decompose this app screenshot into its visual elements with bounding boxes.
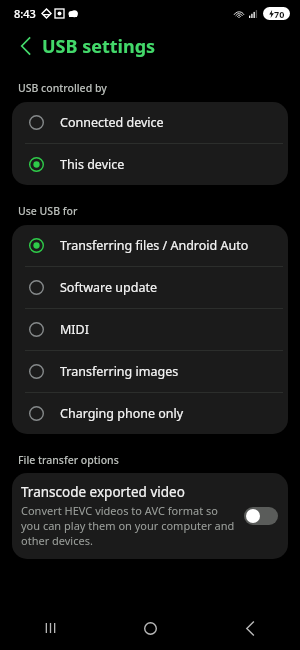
button[interactable]: This device <box>12 144 288 185</box>
button[interactable]: Transcode exported video <box>12 473 288 559</box>
staticText: Software update <box>60 279 157 296</box>
button[interactable]: Home <box>100 606 200 650</box>
button[interactable]: Transferring images <box>12 351 288 392</box>
staticText: Use USB for <box>18 204 78 218</box>
staticText: This device <box>60 156 125 173</box>
staticText: 8:43 <box>14 6 36 21</box>
staticText: Transferring images <box>60 363 179 380</box>
button[interactable]: MIDI <box>12 309 288 350</box>
staticText: Transcode exported video <box>21 483 185 501</box>
button[interactable]: Software update <box>12 267 288 308</box>
button[interactable]: Charging phone only <box>12 393 288 434</box>
staticText: USB controlled by <box>18 81 107 95</box>
staticText: MIDI <box>60 321 89 338</box>
staticText: USB settings <box>42 34 156 59</box>
button[interactable]: Recent apps <box>0 606 100 650</box>
staticText: Convert HEVC videos to AVC format so you… <box>21 503 238 548</box>
button[interactable]: Transferring files / Android Auto <box>12 225 288 266</box>
staticText: Connected device <box>60 114 164 131</box>
button[interactable]: Back <box>8 29 42 63</box>
staticText: Charging phone only <box>60 405 184 422</box>
button[interactable]: Connected device <box>12 102 288 143</box>
button[interactable]: Transcode exported video toggle <box>244 507 278 525</box>
staticText: Transferring files / Android Auto <box>60 237 249 254</box>
button[interactable]: Back <box>200 606 300 650</box>
staticText: 70 <box>274 8 285 20</box>
staticText: File transfer options <box>18 453 119 467</box>
